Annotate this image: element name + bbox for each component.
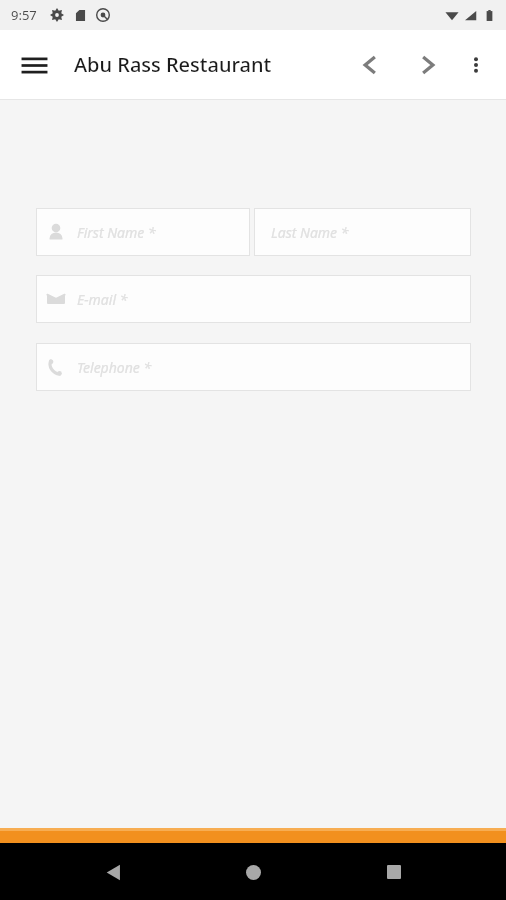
button[interactable]: Forward <box>406 43 450 87</box>
staticText: E-mail * <box>77 290 128 309</box>
button[interactable]: Recent apps <box>366 844 422 900</box>
button[interactable]: Back <box>348 43 392 87</box>
staticText: 9:57 <box>11 6 37 24</box>
staticText: Telephone * <box>77 358 152 377</box>
button[interactable]: Home <box>225 844 281 900</box>
button[interactable]: E-mail * <box>36 275 471 323</box>
staticText: Abu Rass Restaurant <box>74 51 272 78</box>
button[interactable]: Open navigation menu <box>10 41 58 89</box>
button[interactable]: More options <box>454 43 498 87</box>
button[interactable]: First Name * <box>36 208 250 256</box>
button[interactable]: Last Name * <box>254 208 471 256</box>
staticText: First Name * <box>77 223 156 242</box>
button[interactable]: Back <box>85 844 141 900</box>
staticText: Last Name * <box>271 223 349 242</box>
button[interactable]: Telephone * <box>36 343 471 391</box>
